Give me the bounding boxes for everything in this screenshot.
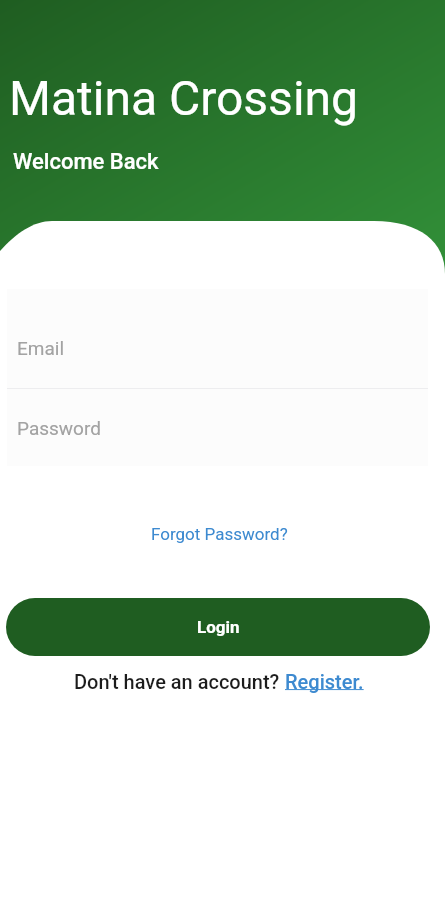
button[interactable]: Password [7, 389, 428, 466]
button[interactable]: Register. [285, 670, 364, 693]
staticText: Password [17, 417, 101, 439]
staticText: Matina Crossing [9, 70, 359, 126]
staticText: Email [17, 337, 65, 359]
staticText: Don't have an account? [74, 670, 285, 693]
staticText: Welcome Back [13, 149, 159, 175]
staticText: Login [197, 617, 240, 637]
button[interactable]: Email [7, 289, 428, 388]
button[interactable]: Forgot Password? [143, 518, 296, 550]
button[interactable]: Login [6, 598, 430, 656]
